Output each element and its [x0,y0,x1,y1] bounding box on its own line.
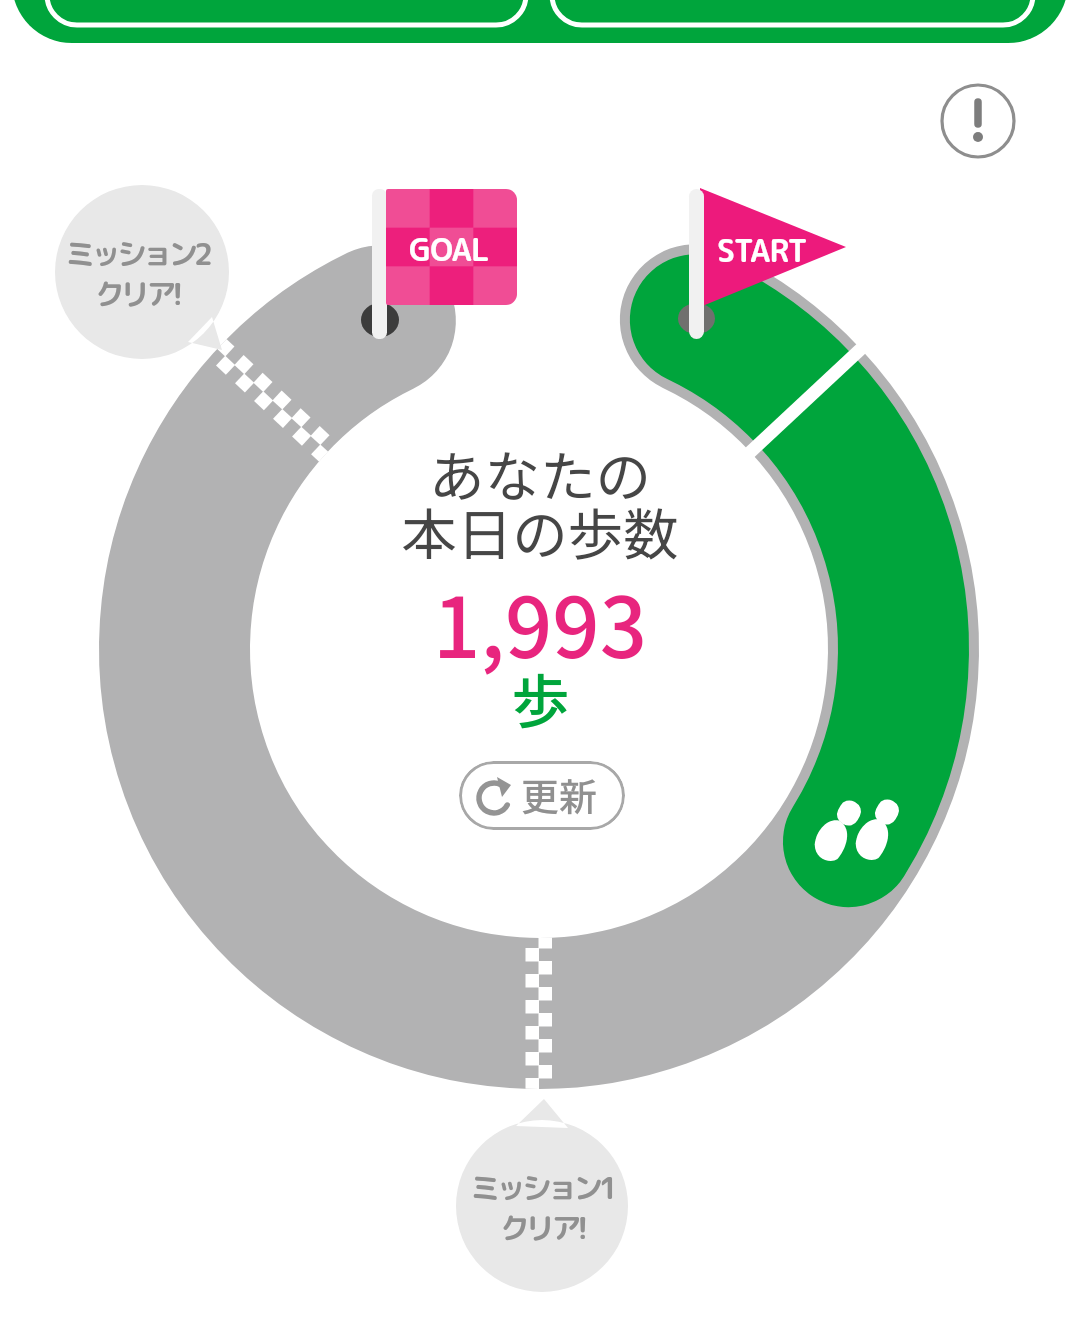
staticText: ミッション1 クリア! [470,1167,614,1249]
staticText: あなたの 本日の歩数 [401,433,679,571]
staticText: GOAL [409,228,490,271]
button[interactable]: ミッション2 クリア! [47,222,227,326]
staticText: START [717,229,807,272]
button[interactable]: Rewards tab [552,0,1033,25]
staticText: 1,993 [433,562,647,682]
staticText: ミッション2 クリア! [65,233,209,315]
button[interactable]: Steps tab [47,0,526,25]
button[interactable]: 更新 [459,761,625,830]
button[interactable]: Information [934,77,1022,165]
button[interactable]: ミッション1 クリア! [452,1156,632,1260]
staticText: 歩 [511,656,570,740]
staticText: 更新 [521,767,598,822]
